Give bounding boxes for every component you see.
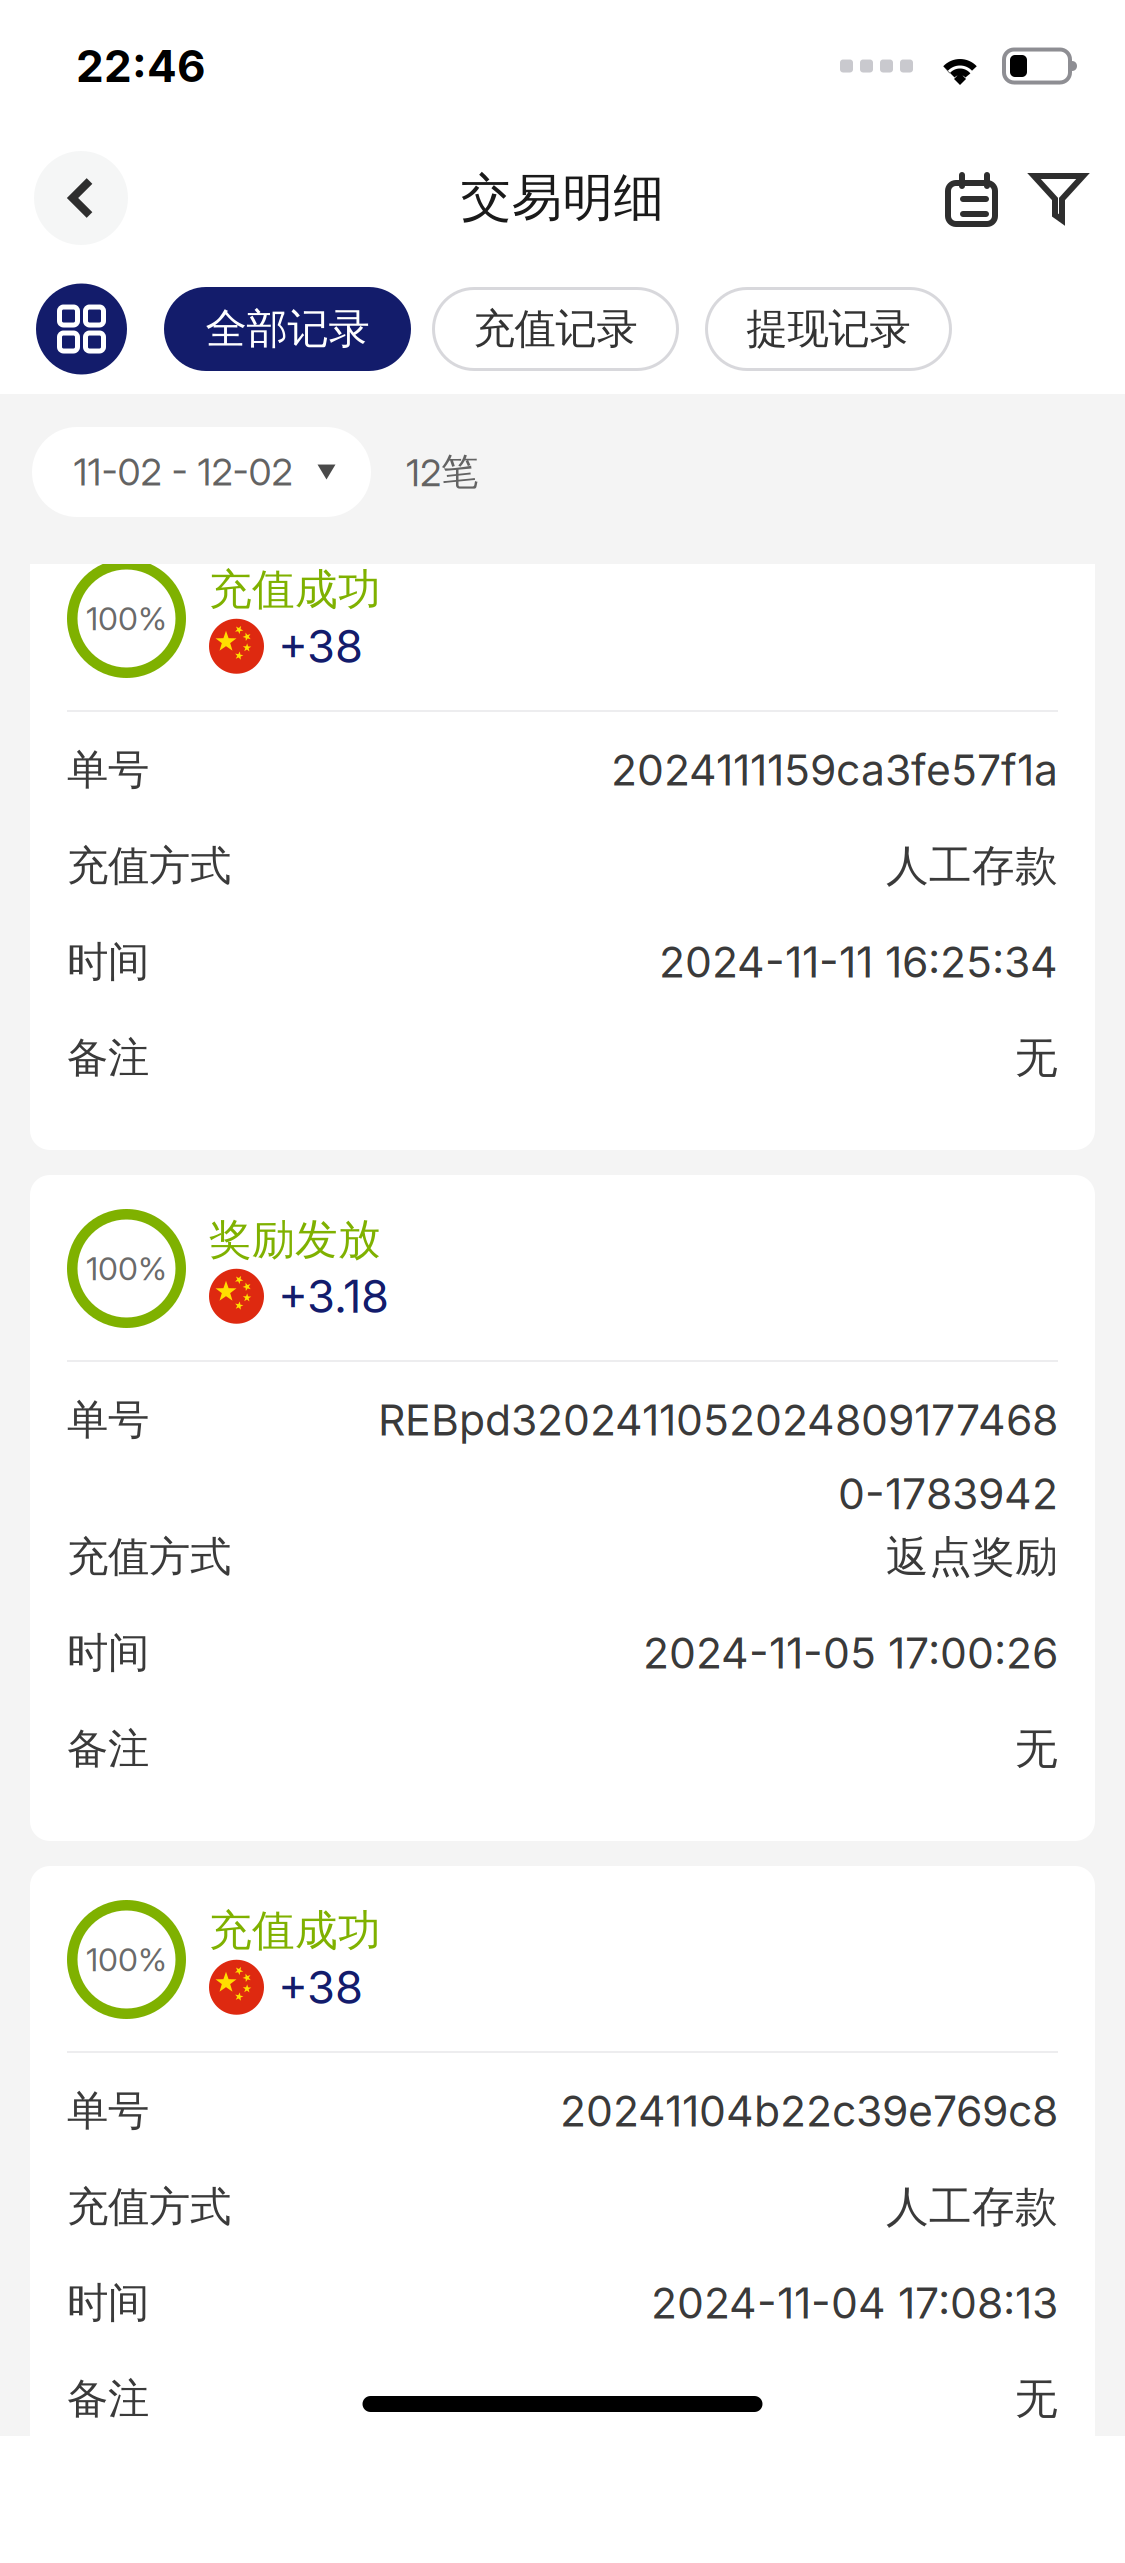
staticText: 2024-11-04 17:08:13: [651, 2277, 1058, 2329]
staticText: 时间: [67, 1627, 149, 1679]
staticText: 100%: [86, 1940, 167, 1979]
staticText: 备注: [67, 1723, 149, 1775]
staticText: 充值方式: [67, 1531, 231, 1583]
staticText: 100%: [86, 1249, 167, 1288]
staticText: 100%: [86, 599, 167, 638]
staticText: 无: [1015, 1031, 1058, 1085]
staticText: 奖励发放: [209, 1213, 381, 1267]
staticText: 人工存款: [886, 839, 1058, 893]
staticText: 22:46: [76, 39, 206, 93]
staticText: 0-1783942: [838, 1468, 1058, 1520]
staticText: +3.18: [278, 1269, 389, 1324]
staticText: 交易明细: [460, 166, 664, 230]
button[interactable]: 全部记录: [164, 287, 411, 371]
button[interactable]: Calendar: [934, 158, 1015, 238]
button[interactable]: Grid view: [36, 283, 127, 374]
staticText: 充值方式: [67, 2181, 231, 2233]
staticText: 2024111159ca3fe57f1a: [611, 744, 1058, 796]
staticText: 充值成功: [209, 563, 381, 617]
staticText: 时间: [67, 936, 149, 988]
button[interactable]: Back: [34, 151, 128, 245]
button[interactable]: Filter: [1017, 159, 1100, 237]
staticText: 提现记录: [746, 303, 910, 355]
staticText: REBpd3202411052024809177468: [378, 1394, 1058, 1446]
staticText: 11-02 - 12-02: [73, 449, 292, 495]
button[interactable]: 充值记录: [432, 287, 679, 371]
staticText: 无: [1015, 2372, 1058, 2426]
button[interactable]: 11-02 - 12-02: [32, 427, 371, 517]
staticText: 全部记录: [205, 303, 369, 355]
staticText: 2024-11-05 17:00:26: [643, 1627, 1058, 1679]
staticText: +38: [278, 1960, 363, 2015]
staticText: 单号: [67, 1394, 149, 1446]
staticText: 备注: [67, 2373, 149, 2425]
staticText: 充值记录: [473, 303, 637, 355]
staticText: 单号: [67, 2085, 149, 2137]
staticText: +38: [278, 619, 363, 674]
staticText: 无: [1015, 1722, 1058, 1776]
button[interactable]: 提现记录: [705, 287, 952, 371]
staticText: 充值成功: [209, 1904, 381, 1958]
staticText: 充值方式: [67, 840, 231, 892]
staticText: 单号: [67, 744, 149, 796]
staticText: 20241104b22c39e769c8: [560, 2085, 1058, 2137]
staticText: 人工存款: [886, 2180, 1058, 2234]
staticText: 时间: [67, 2277, 149, 2329]
staticText: 返点奖励: [886, 1530, 1058, 1584]
staticText: 2024-11-11 16:25:34: [659, 936, 1058, 988]
staticText: 备注: [67, 1032, 149, 1084]
staticText: 12笔: [406, 448, 478, 495]
